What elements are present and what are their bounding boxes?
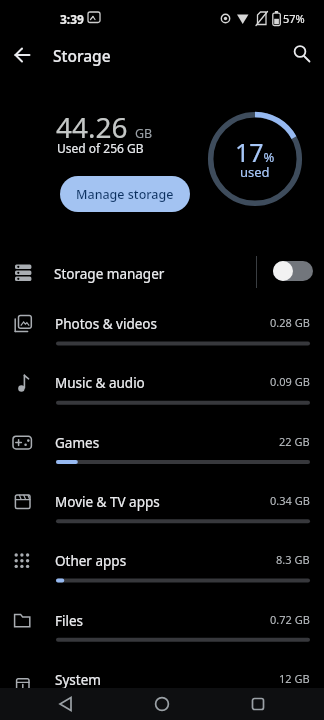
staticText: 44.26 — [56, 108, 128, 146]
staticText: 57% — [283, 11, 305, 26]
button[interactable] — [0, 294, 324, 353]
button[interactable] — [0, 353, 324, 412]
button[interactable] — [108, 688, 216, 720]
staticText: Storage — [53, 45, 111, 66]
staticText: Storage manager — [54, 265, 165, 283]
staticText: Music & audio — [55, 374, 145, 392]
button[interactable] — [0, 591, 324, 650]
button[interactable] — [286, 38, 318, 68]
staticText: used — [240, 163, 270, 181]
button[interactable] — [6, 41, 38, 69]
staticText: 12 GB — [279, 671, 310, 686]
staticText: Manage storage — [76, 186, 174, 203]
staticText: Used of 256 GB — [57, 140, 144, 156]
staticText: 3:39 — [60, 11, 84, 27]
staticText: Photos & videos — [55, 315, 157, 333]
staticText: 0.09 GB — [270, 374, 310, 389]
staticText: 0.28 GB — [270, 315, 310, 330]
button[interactable] — [0, 650, 324, 709]
staticText: Games — [55, 434, 100, 452]
button[interactable] — [216, 688, 324, 720]
staticText: 22 GB — [279, 434, 310, 449]
staticText: Movie & TV apps — [55, 493, 160, 511]
staticText: GB — [135, 125, 153, 142]
button[interactable] — [0, 472, 324, 531]
staticText: 0.72 GB — [270, 612, 310, 627]
button[interactable] — [273, 261, 313, 281]
button[interactable]: Manage storage — [60, 176, 190, 212]
staticText: 8.3 GB — [276, 552, 310, 567]
staticText: System — [55, 671, 101, 689]
staticText: Files — [55, 612, 84, 630]
staticText: Other apps — [55, 552, 127, 570]
button[interactable] — [0, 531, 324, 590]
button[interactable] — [0, 248, 324, 296]
staticText: 17% — [235, 135, 275, 168]
button[interactable] — [0, 413, 324, 472]
button[interactable] — [0, 688, 108, 720]
staticText: 0.34 GB — [270, 493, 310, 508]
